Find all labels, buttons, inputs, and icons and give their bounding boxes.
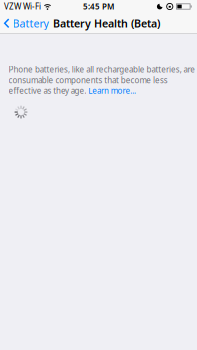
staticText: Phone batteries, like all rechargeable b… xyxy=(8,64,195,75)
button[interactable]: Learn more... xyxy=(88,85,136,96)
staticText: Battery Health (Beta) xyxy=(53,16,160,30)
staticText: Learn more... xyxy=(88,85,136,96)
staticText: consumable components that become less xyxy=(8,75,168,85)
staticText: 5:45 PM xyxy=(83,1,114,12)
staticText: Battery xyxy=(12,16,48,30)
button[interactable]: Back xyxy=(0,16,48,30)
staticText: VZW Wi-Fi xyxy=(4,1,41,12)
staticText: effective as they age. xyxy=(8,85,88,96)
